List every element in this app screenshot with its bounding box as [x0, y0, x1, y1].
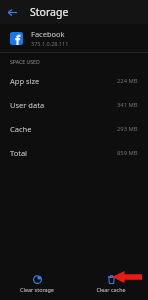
staticText: User data	[10, 100, 45, 110]
staticText: Facebook	[31, 29, 65, 39]
button[interactable]: App size	[0, 69, 148, 93]
button[interactable]: Cache	[0, 117, 148, 141]
staticText: Storage	[30, 5, 69, 19]
staticText: Clear cache	[96, 286, 126, 293]
button[interactable]: Total	[0, 141, 148, 165]
staticText: 859 MB	[117, 149, 138, 157]
button[interactable]: Clear storage	[0, 272, 74, 296]
button[interactable]: Facebook	[0, 24, 148, 52]
staticText: App size	[10, 76, 40, 86]
staticText: Clear storage	[20, 286, 54, 293]
staticText: 341 MB	[117, 101, 138, 109]
staticText: Cache	[10, 124, 32, 134]
staticText: 224 MB	[117, 77, 138, 85]
staticText: SPACE USED	[10, 58, 40, 65]
staticText: 293 MB	[117, 125, 138, 133]
staticText: Total	[10, 148, 28, 158]
button[interactable]: Clear cache	[74, 272, 148, 296]
button[interactable]: User data	[0, 93, 148, 117]
staticText: 375.1.0.28.111	[31, 40, 69, 47]
button[interactable]: Back	[0, 0, 24, 24]
